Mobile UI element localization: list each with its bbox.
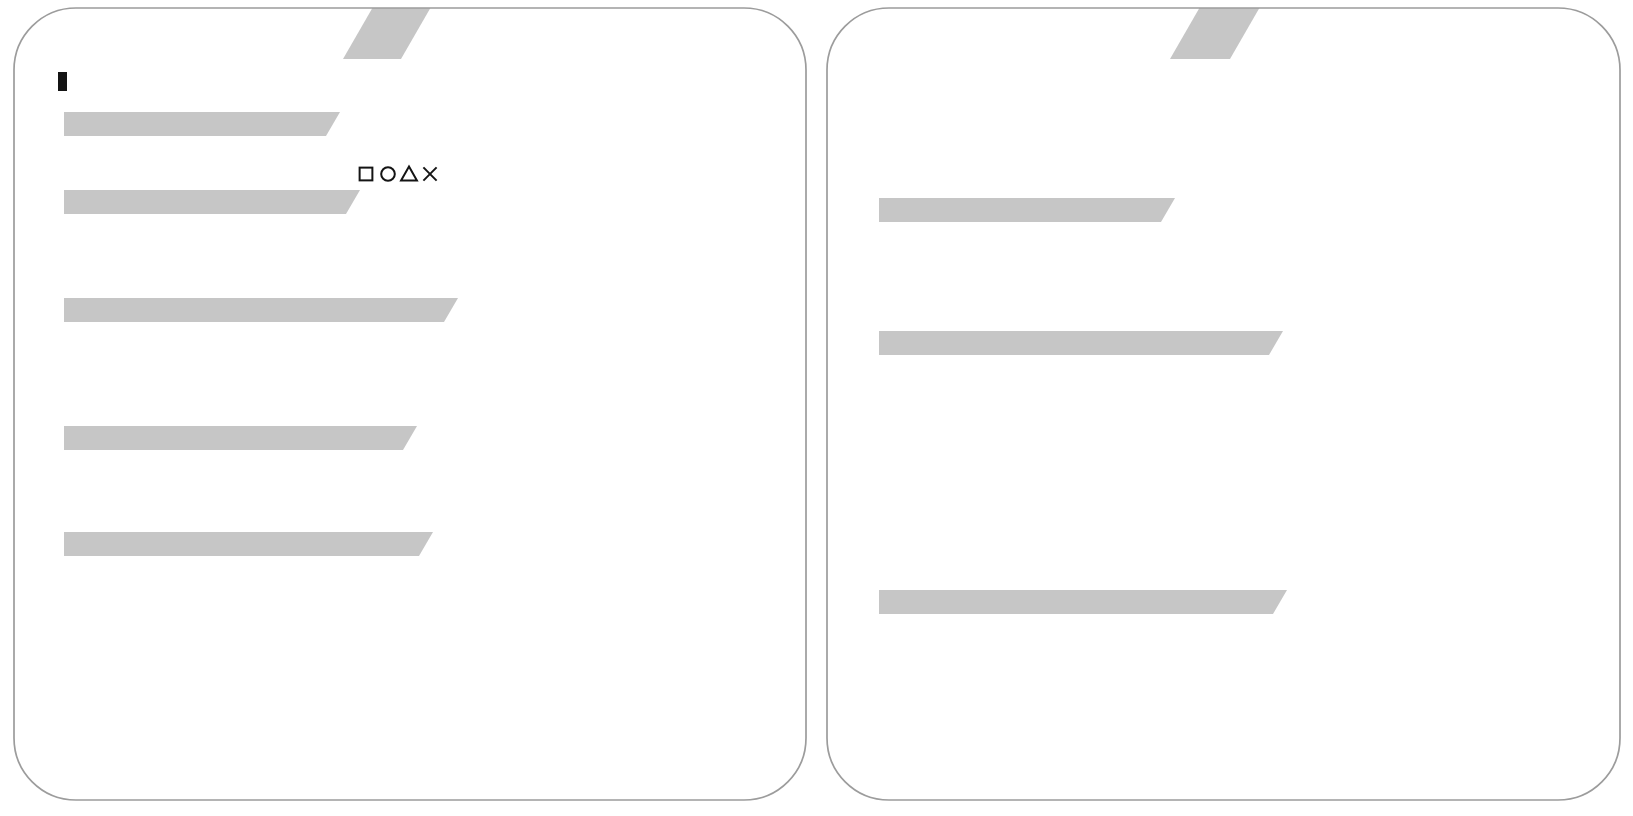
button[interactable]: Two document pages with placeholder text <box>0 0 1633 816</box>
